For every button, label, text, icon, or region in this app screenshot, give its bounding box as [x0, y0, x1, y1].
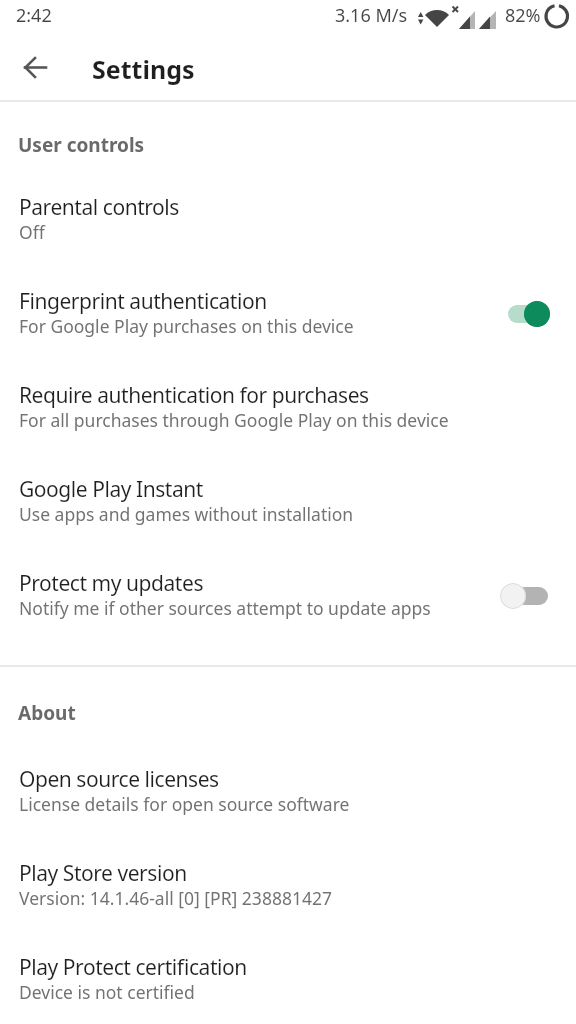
- button[interactable]: Open source licenses: [0, 765, 576, 818]
- button[interactable]: Parental controls: [0, 193, 576, 246]
- staticText: Fingerprint authentication: [19, 287, 267, 316]
- staticText: For Google Play purchases on this device: [19, 314, 354, 338]
- staticText: Play Protect certification: [19, 953, 247, 982]
- button[interactable]: Require authentication for purchases: [0, 381, 576, 434]
- staticText: Use apps and games without installation: [19, 502, 354, 526]
- button[interactable]: Protect my updates: [0, 569, 576, 622]
- staticText: 82%: [505, 3, 541, 28]
- button[interactable]: Play Protect certification: [0, 953, 576, 1006]
- staticText: For all purchases through Google Play on…: [19, 408, 449, 432]
- staticText: License details for open source software: [19, 792, 350, 816]
- staticText: About: [18, 700, 76, 726]
- staticText: Settings: [92, 52, 195, 86]
- staticText: 3.16 M/s: [335, 3, 408, 28]
- staticText: Play Store version: [19, 859, 187, 888]
- staticText: Require authentication for purchases: [19, 381, 369, 410]
- button[interactable]: Google Play Instant: [0, 475, 576, 528]
- staticText: Open source licenses: [19, 765, 219, 794]
- staticText: Version: 14.1.46-all [0] [PR] 238881427: [19, 886, 332, 910]
- staticText: Parental controls: [19, 193, 179, 222]
- button[interactable]: [500, 301, 550, 327]
- button[interactable]: [12, 44, 58, 90]
- staticText: Protect my updates: [19, 569, 203, 598]
- staticText: Off: [19, 220, 45, 244]
- staticText: Device is not certified: [19, 980, 195, 1004]
- button[interactable]: Play Store version: [0, 859, 576, 912]
- staticText: Google Play Instant: [19, 475, 203, 504]
- staticText: User controls: [18, 132, 145, 158]
- button[interactable]: Fingerprint authentication: [0, 287, 576, 340]
- staticText: Notify me if other sources attempt to up…: [19, 596, 431, 620]
- staticText: 2:42: [16, 3, 52, 28]
- button[interactable]: [500, 583, 550, 609]
